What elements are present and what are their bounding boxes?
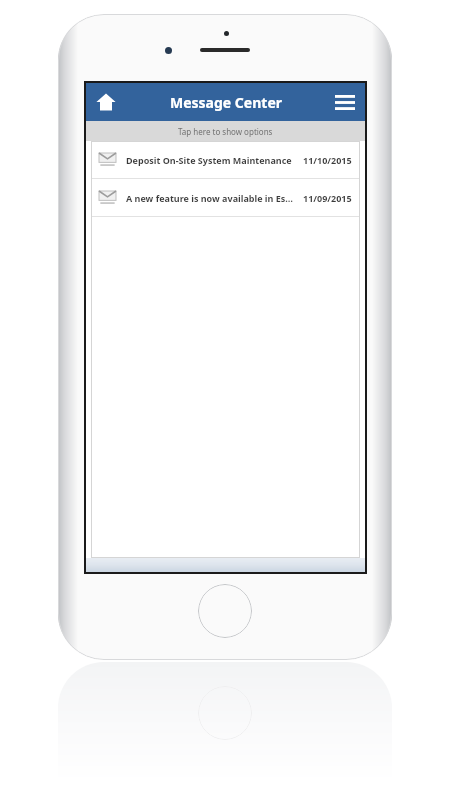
button[interactable]: Home — [86, 83, 126, 121]
button[interactable]: Menu — [325, 83, 365, 121]
staticText: Tap here to show options — [178, 126, 273, 137]
button[interactable]: Deposit On-Site System Maintenance — [91, 141, 360, 178]
staticText: 11/10/2015 — [303, 154, 352, 166]
staticText: 11/09/2015 — [303, 192, 352, 204]
button[interactable]: Home button — [198, 584, 252, 638]
staticText: Deposit On-Site System Maintenance — [126, 154, 297, 166]
button[interactable]: A new feature is now available in Escro… — [91, 179, 360, 216]
staticText: A new feature is now available in Escro… — [126, 192, 297, 204]
button[interactable]: Tap here to show options — [86, 121, 365, 141]
staticText: Message Center — [170, 93, 282, 112]
